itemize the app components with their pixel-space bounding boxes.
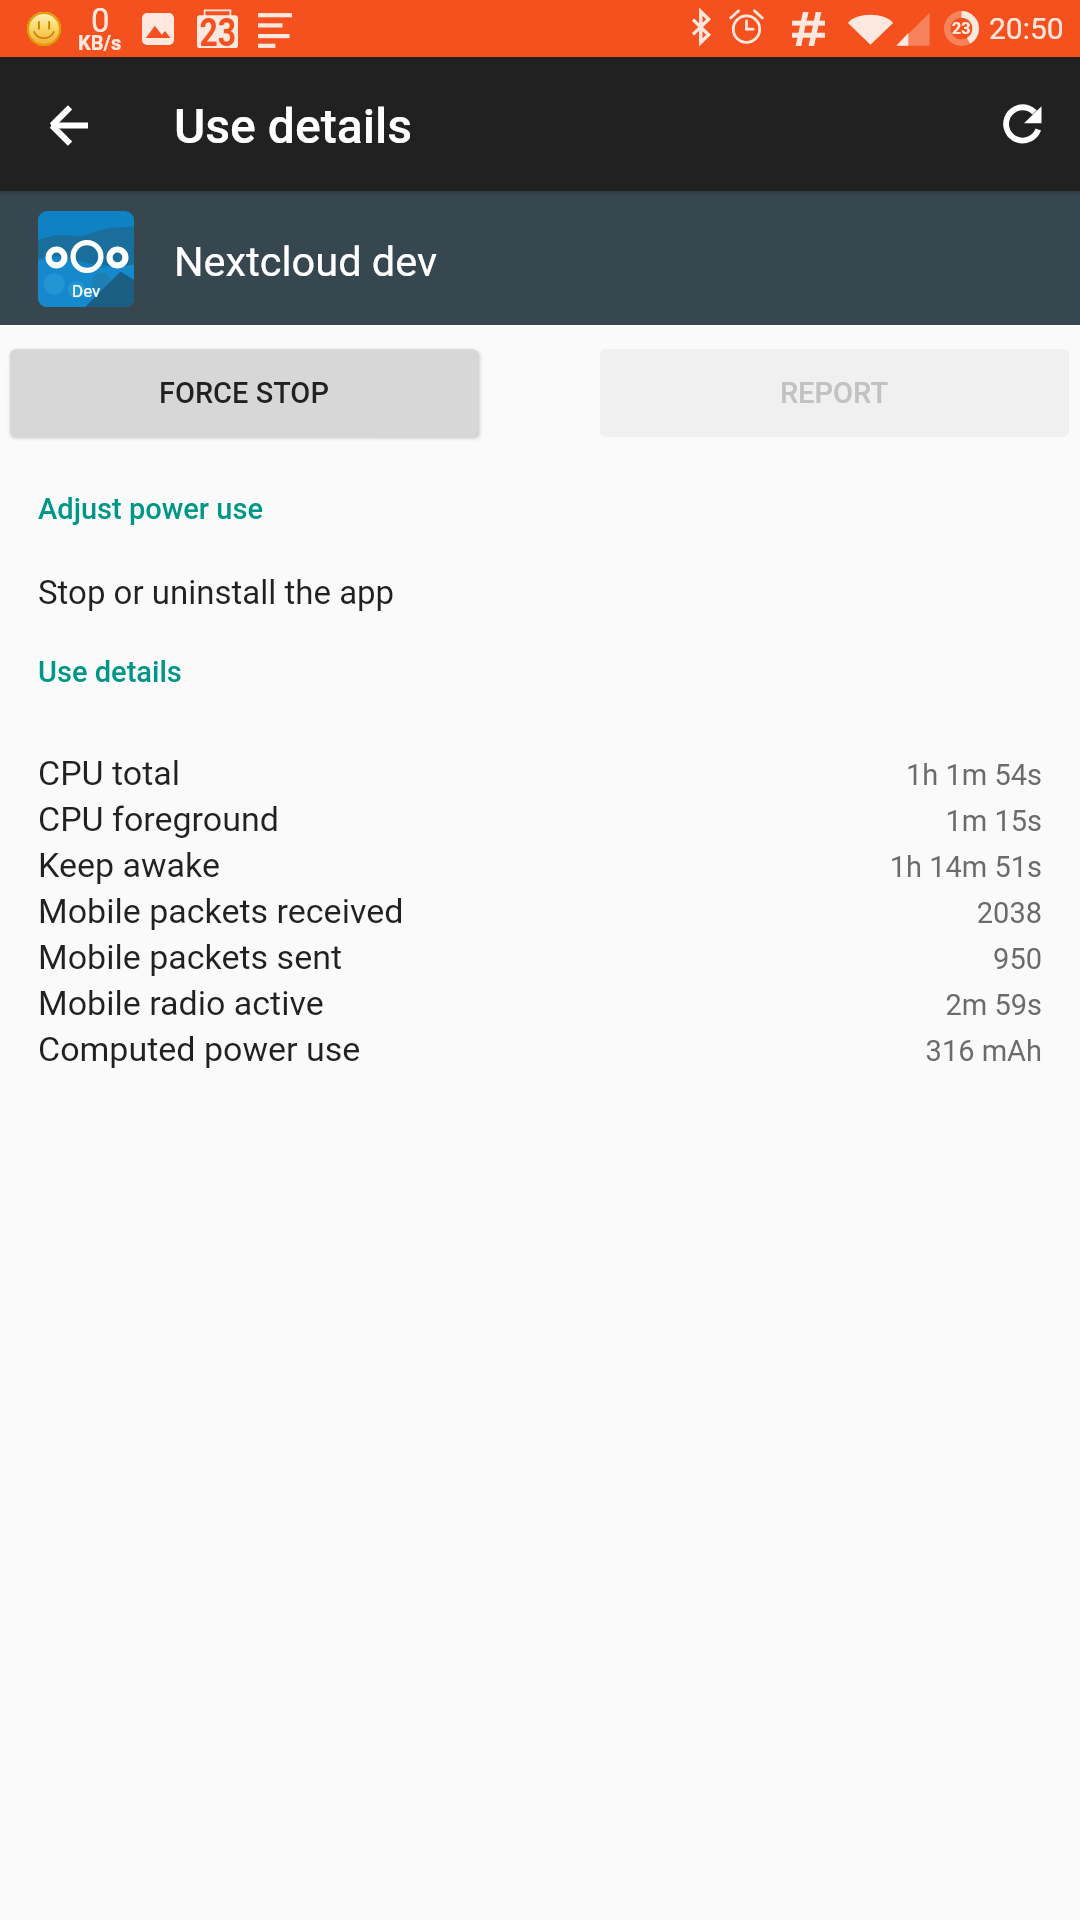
staticText: Mobile radio active — [38, 983, 324, 1023]
staticText: CPU total — [38, 753, 181, 793]
staticText: 1h 1m 54s — [906, 758, 1042, 792]
button[interactable]: Navigate up — [13, 70, 123, 180]
staticText: CPU foreground — [38, 799, 279, 839]
staticText: 20:50 — [989, 11, 1064, 46]
staticText: Mobile packets sent — [38, 937, 343, 977]
staticText: 950 — [993, 942, 1042, 976]
staticText: 0 — [91, 1, 110, 40]
staticText: Nextcloud dev — [174, 237, 438, 286]
staticText: 316 mAh — [925, 1034, 1042, 1068]
staticText: Use details — [38, 655, 182, 689]
staticText: Stop or uninstall the app — [38, 573, 395, 612]
staticText: 2m 59s — [945, 988, 1042, 1022]
button[interactable]: FORCE STOP — [10, 349, 478, 437]
staticText: Adjust power use — [38, 492, 263, 526]
button[interactable]: Dev — [0, 191, 1080, 325]
staticText: Computed power use — [38, 1029, 361, 1069]
button[interactable]: Refresh — [968, 70, 1078, 180]
staticText: FORCE STOP — [159, 376, 329, 410]
staticText: Keep awake — [38, 845, 220, 885]
staticText: 23 — [199, 11, 236, 50]
staticText: REPORT — [780, 376, 889, 410]
staticText: 2038 — [976, 896, 1042, 930]
staticText: Dev — [72, 281, 101, 301]
staticText: KB/s — [78, 31, 122, 54]
button[interactable]: REPORT — [600, 349, 1069, 437]
staticText: 23 — [952, 19, 971, 38]
staticText: 1m 15s — [945, 804, 1042, 838]
staticText: 1h 14m 51s — [889, 850, 1042, 884]
staticText: Mobile packets received — [38, 891, 404, 931]
staticText: Use details — [174, 98, 413, 154]
